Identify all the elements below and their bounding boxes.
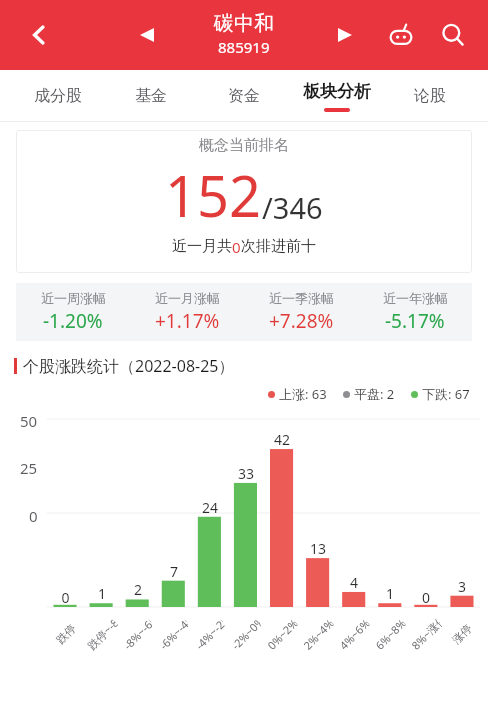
button[interactable]: 板块分析 bbox=[290, 70, 383, 122]
staticText: 论股 bbox=[414, 86, 446, 106]
staticText: 涨停 bbox=[449, 621, 475, 647]
staticText: 概念当前排名 bbox=[199, 136, 289, 155]
staticText: 平盘: 2 bbox=[354, 385, 395, 403]
staticText: -5.17% bbox=[385, 308, 445, 334]
staticText: -8%~-6% bbox=[120, 616, 156, 653]
staticText: 近一月共 bbox=[172, 237, 232, 256]
staticText: 资金 bbox=[228, 86, 260, 106]
button[interactable]: 近一年涨幅 bbox=[358, 290, 472, 334]
button[interactable]: 基金 bbox=[104, 70, 197, 122]
staticText: 152 bbox=[165, 157, 262, 233]
button[interactable]: 概念当前排名 bbox=[16, 130, 472, 273]
staticText: 6%~8% bbox=[372, 616, 408, 653]
button[interactable]: 近一周涨幅 bbox=[16, 290, 130, 334]
staticText: 成分股 bbox=[34, 86, 82, 106]
button[interactable]: 成分股 bbox=[12, 70, 104, 122]
staticText: 8%~涨停 bbox=[408, 616, 444, 653]
staticText: 33 bbox=[228, 464, 264, 483]
staticText: 4 bbox=[336, 573, 372, 592]
staticText: 碳中和 bbox=[214, 11, 274, 36]
staticText: 3 bbox=[444, 577, 480, 596]
staticText: 近一季涨幅 bbox=[269, 290, 334, 306]
staticText: 0 bbox=[232, 237, 241, 257]
staticText: /346 bbox=[262, 188, 323, 227]
staticText: 0 bbox=[408, 588, 444, 607]
button[interactable]: 近一月涨幅 bbox=[130, 290, 244, 334]
staticText: 0%~2% bbox=[264, 616, 300, 653]
staticText: 次排进前十 bbox=[241, 237, 316, 256]
staticText: 近一月涨幅 bbox=[155, 290, 220, 306]
staticText: 4%~6% bbox=[336, 616, 372, 653]
staticText: 跌停 bbox=[53, 621, 79, 647]
staticText: 板块分析 bbox=[303, 81, 371, 102]
staticText: 基金 bbox=[135, 86, 167, 106]
staticText: -2%~0% bbox=[228, 616, 264, 653]
button[interactable]: 论股 bbox=[383, 70, 476, 122]
staticText: 7 bbox=[156, 562, 192, 581]
staticText: 跌停~-8% bbox=[84, 616, 120, 653]
staticText: 上涨: 63 bbox=[279, 385, 327, 403]
staticText: 42 bbox=[264, 430, 300, 449]
button[interactable]: Search bbox=[434, 16, 472, 54]
staticText: 25 bbox=[20, 458, 38, 478]
staticText: 1 bbox=[84, 584, 120, 603]
button[interactable]: Back bbox=[22, 18, 56, 52]
button[interactable]: Assistant robot bbox=[382, 16, 420, 54]
staticText: 885919 bbox=[218, 37, 270, 57]
staticText: -1.20% bbox=[43, 308, 103, 334]
staticText: 13 bbox=[300, 539, 336, 558]
staticText: 近一年涨幅 bbox=[383, 290, 448, 306]
button[interactable]: Previous bbox=[130, 18, 164, 52]
button[interactable]: Next bbox=[328, 18, 362, 52]
button[interactable]: 资金 bbox=[197, 70, 290, 122]
staticText: -4%~-2% bbox=[192, 616, 228, 653]
staticText: 0 bbox=[29, 506, 38, 526]
staticText: 2 bbox=[120, 580, 156, 599]
staticText: +7.28% bbox=[269, 308, 334, 334]
staticText: 近一周涨幅 bbox=[41, 290, 106, 306]
staticText: 1 bbox=[372, 584, 408, 603]
button[interactable]: 近一季涨幅 bbox=[244, 290, 358, 334]
staticText: 下跌: 67 bbox=[422, 385, 470, 403]
staticText: -6%~-4% bbox=[156, 616, 192, 653]
staticText: 0 bbox=[47, 588, 84, 607]
staticText: 24 bbox=[192, 498, 228, 517]
staticText: +1.17% bbox=[155, 308, 220, 334]
staticText: 2%~4% bbox=[300, 616, 336, 653]
staticText: 50 bbox=[20, 411, 38, 431]
staticText: 个股涨跌统计（2022-08-25） bbox=[23, 355, 235, 377]
